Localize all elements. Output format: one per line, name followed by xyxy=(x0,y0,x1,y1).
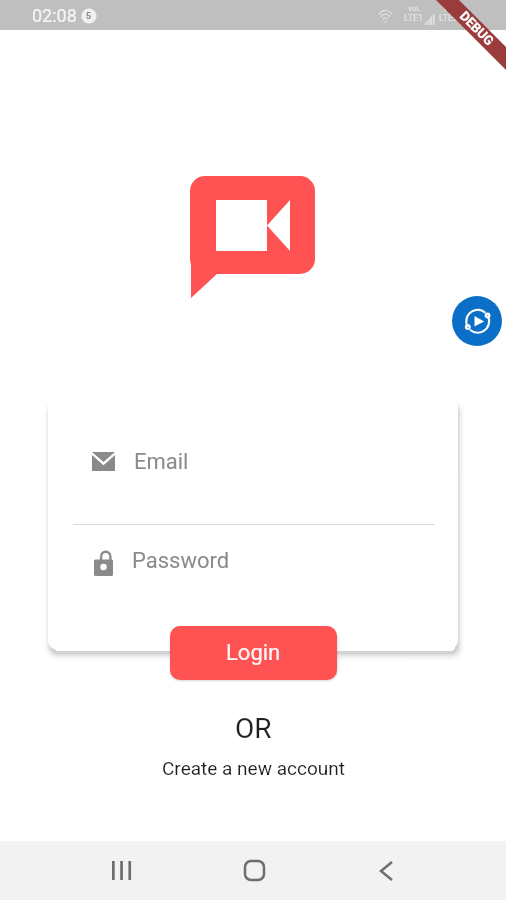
staticText: 02:08 xyxy=(32,5,77,26)
staticText: VoL xyxy=(408,5,421,13)
button[interactable]: Hot reload xyxy=(452,296,502,346)
staticText: LTE1 xyxy=(404,13,424,24)
button[interactable]: Login xyxy=(170,626,337,680)
staticText: OR xyxy=(235,712,272,745)
staticText: Create a new account xyxy=(162,757,345,779)
staticText: Password xyxy=(132,548,230,574)
staticText: Email xyxy=(134,449,189,475)
button[interactable]: Create a new account xyxy=(162,757,345,779)
staticText: VoL xyxy=(443,5,456,13)
button[interactable]: Back xyxy=(342,841,430,900)
staticText: DEBUG xyxy=(457,8,497,49)
button[interactable]: Password xyxy=(48,531,458,591)
button[interactable]: Home xyxy=(210,841,298,900)
button[interactable]: Email xyxy=(48,432,458,491)
staticText: Login xyxy=(226,640,281,666)
staticText: LTE2 xyxy=(439,13,459,24)
button[interactable]: Recent apps xyxy=(77,841,166,900)
staticText: 5 xyxy=(86,11,92,22)
